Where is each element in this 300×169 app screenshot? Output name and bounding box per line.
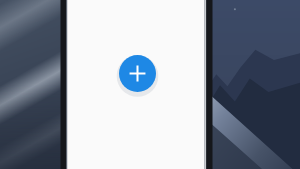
button[interactable]: Add bbox=[119, 55, 156, 92]
